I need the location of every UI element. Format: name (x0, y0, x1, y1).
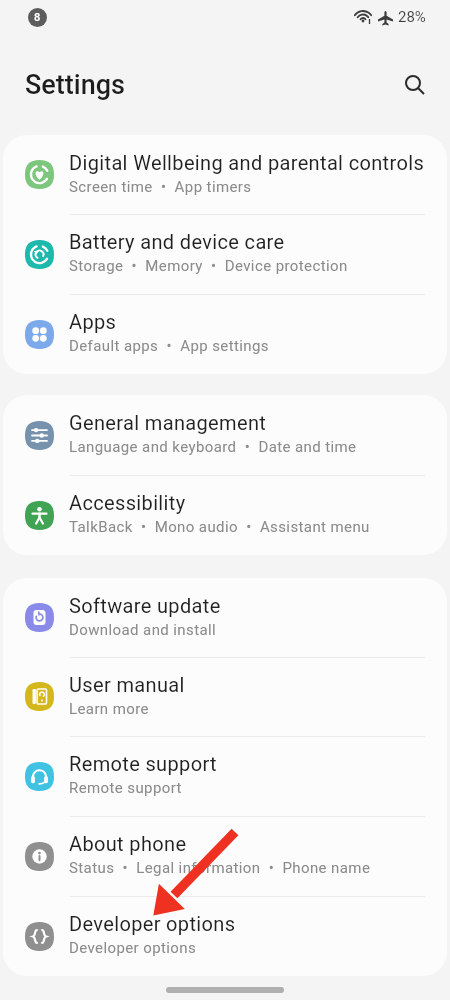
staticText: Download and install (69, 621, 217, 639)
staticText: Developer options (69, 912, 236, 935)
staticText: About phone (69, 832, 187, 855)
staticText: Battery and device care (69, 230, 285, 253)
staticText: Learn more (69, 700, 149, 718)
button[interactable]: Battery and device care (3, 214, 447, 294)
staticText: Remote support (69, 752, 217, 775)
staticText: Accessibility (69, 491, 186, 514)
button[interactable]: Software update (3, 578, 447, 657)
staticText: Settings (25, 69, 125, 101)
staticText: Remote support (69, 779, 182, 797)
button[interactable]: General management (3, 395, 447, 475)
button[interactable]: Accessibility (3, 475, 447, 555)
button[interactable]: About phone (3, 816, 447, 896)
button[interactable]: User manual (3, 657, 447, 736)
staticText: TalkBack • Mono audio • Assistant menu (69, 518, 370, 536)
staticText: Developer options (69, 939, 197, 957)
staticText: 28% (398, 8, 426, 26)
staticText: Apps (69, 310, 117, 333)
staticText: Storage • Memory • Device protection (69, 257, 348, 275)
button[interactable]: Digital Wellbeing and parental controls (3, 135, 447, 214)
staticText: Digital Wellbeing and parental controls (69, 151, 425, 174)
staticText: Default apps • App settings (69, 337, 269, 355)
button[interactable]: Apps (3, 294, 447, 374)
staticText: Language and keyboard • Date and time (69, 438, 357, 456)
staticText: General management (69, 411, 267, 434)
staticText: Software update (69, 594, 221, 617)
button[interactable]: Developer options (3, 896, 447, 976)
button[interactable]: Remote support (3, 736, 447, 816)
staticText: User manual (69, 673, 185, 696)
button[interactable] (404, 74, 426, 96)
staticText: Screen time • App timers (69, 178, 252, 196)
staticText: Status • Legal information • Phone name (69, 859, 371, 877)
staticText: 8 (34, 11, 41, 24)
